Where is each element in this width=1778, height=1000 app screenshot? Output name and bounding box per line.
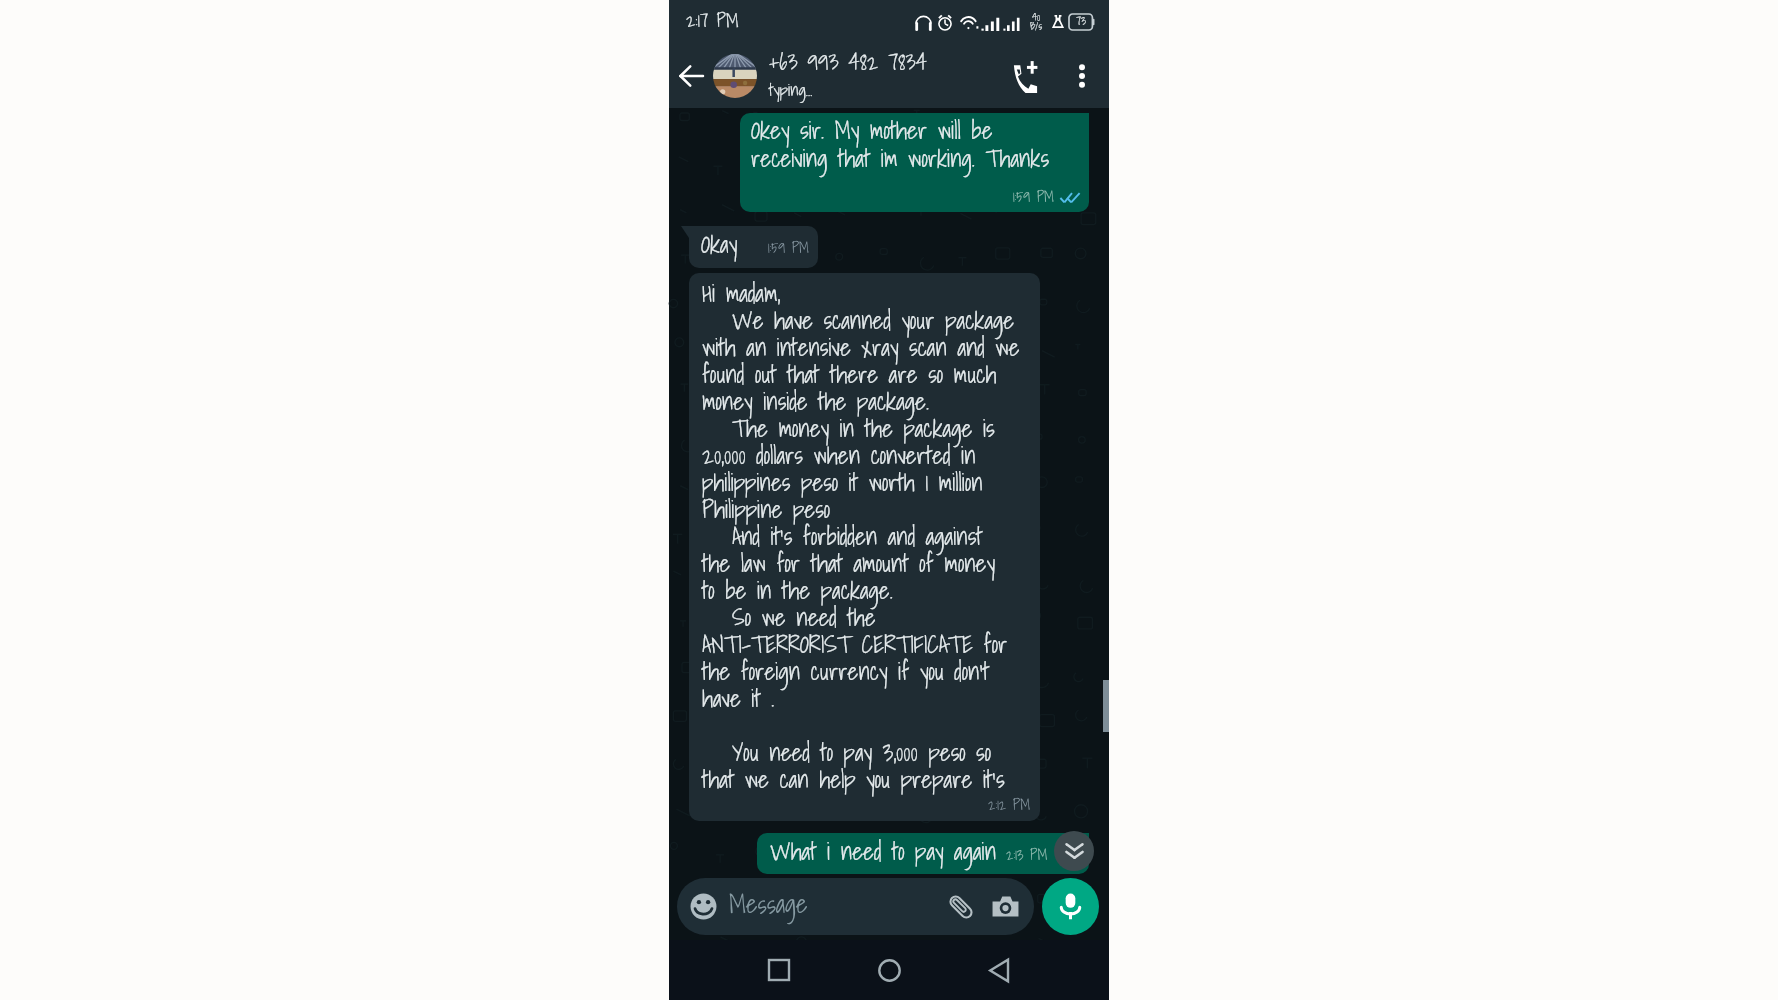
button[interactable]: Attach — [948, 894, 974, 920]
staticText: with an intensive xray scan and we — [702, 337, 1020, 363]
button[interactable]: Emoji — [677, 878, 1034, 935]
button[interactable]: Scroll to bottom — [1054, 831, 1094, 871]
staticText: Philippine peso — [702, 499, 831, 525]
staticText: You need to pay 3,000 peso so — [732, 742, 991, 768]
staticText: Okay — [701, 234, 738, 260]
staticText: 2:13 PM — [1006, 848, 1048, 864]
button[interactable]: Contact photo — [713, 54, 757, 98]
staticText: typing... — [769, 82, 813, 101]
staticText: 20,000 dollars when converted in — [702, 445, 976, 471]
button[interactable]: Recent apps — [751, 942, 807, 998]
staticText: 73 — [1076, 16, 1087, 28]
button[interactable]: +63 993 482 7834 — [769, 49, 1001, 103]
staticText: 1:59 PM — [1013, 190, 1055, 206]
button[interactable]: Camera — [992, 895, 1019, 918]
button[interactable]: Emoji — [690, 893, 717, 920]
staticText: 40 — [1032, 13, 1041, 22]
staticText: to be in the package. — [702, 580, 893, 606]
staticText: 2:17 PM — [686, 12, 739, 32]
button[interactable]: Voice message — [1042, 878, 1099, 935]
staticText: Okey sir. My mother will be — [751, 120, 993, 146]
staticText: 1:59 PM — [768, 241, 810, 257]
staticText: the foreign currency if you don't — [702, 661, 990, 687]
staticText: 2:12 PM — [988, 798, 1031, 814]
staticText: have it . — [702, 688, 775, 714]
button[interactable]: Home — [861, 942, 917, 998]
staticText: B/s — [1030, 22, 1043, 31]
button[interactable]: Okay — [689, 226, 818, 268]
button[interactable]: Okey sir. My mother will be — [740, 113, 1089, 212]
staticText: +63 993 482 7834 — [769, 52, 927, 76]
staticText: ANTI-TERRORIST CERTIFICATE for — [702, 634, 1008, 660]
button[interactable]: More options — [1063, 57, 1101, 95]
staticText: So we need the — [732, 607, 876, 633]
button[interactable]: Voice call — [1001, 52, 1049, 100]
staticText: the law for that amount of money — [702, 553, 995, 579]
button[interactable]: What i need to pay again — [757, 833, 1089, 874]
button[interactable]: Back — [971, 942, 1027, 998]
staticText: The money in the package is — [732, 418, 995, 444]
staticText: Message — [729, 893, 948, 920]
staticText: We have scanned your package — [732, 310, 1015, 336]
staticText: What i need to pay again — [770, 841, 997, 867]
staticText: found out that there are so much — [702, 364, 997, 390]
staticText: money inside the package. — [702, 391, 929, 417]
button[interactable]: Hi madam, — [689, 273, 1040, 821]
staticText: that we can help you prepare it's — [702, 769, 1005, 795]
button[interactable]: Back — [669, 54, 713, 98]
staticText: philippines peso it worth 1 million — [702, 472, 983, 498]
staticText: Hi madam, — [702, 283, 781, 309]
staticText: receiving that im working. Thanks — [751, 148, 1050, 174]
staticText: And it's forbidden and against — [732, 526, 983, 552]
